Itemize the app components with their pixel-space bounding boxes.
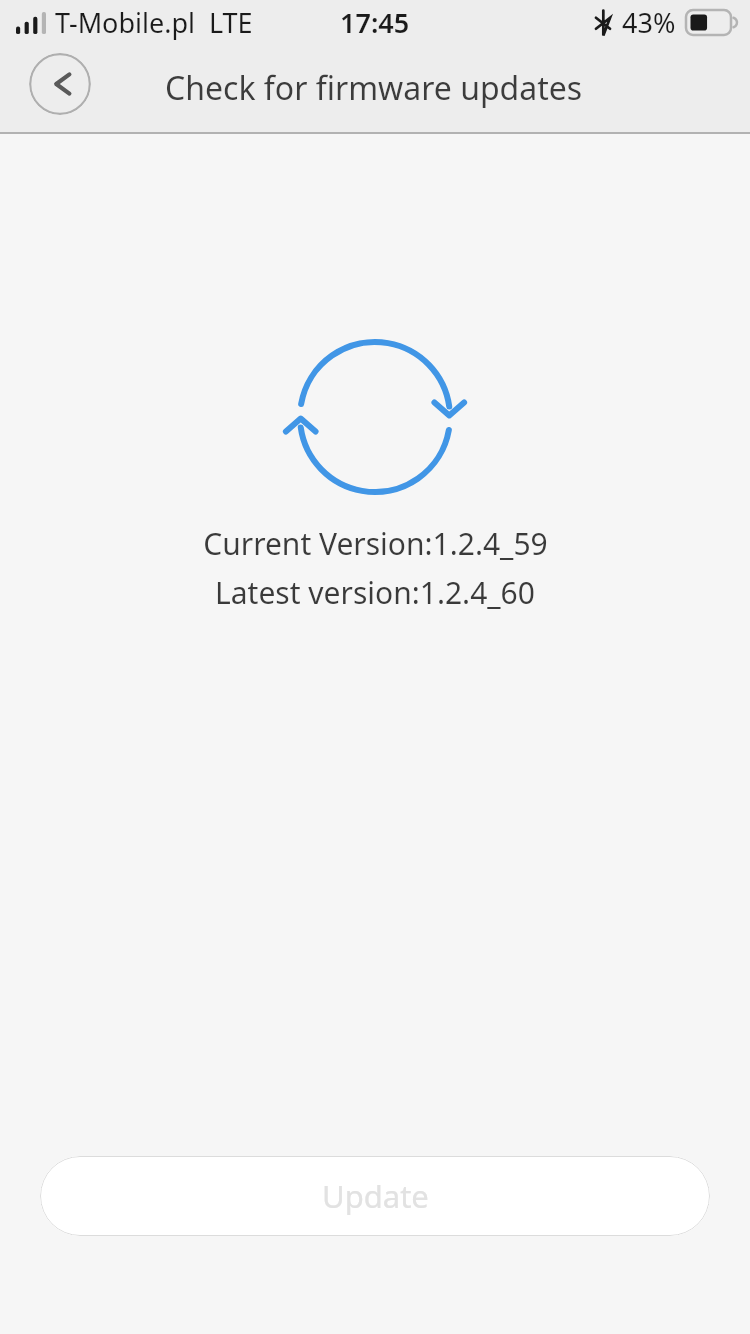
staticText: Update: [322, 1175, 429, 1217]
staticText: Current Version:1.2.4_59: [203, 523, 548, 564]
button[interactable]: Update: [40, 1156, 710, 1236]
staticText: LTE: [209, 4, 253, 41]
button[interactable]: Back: [29, 53, 91, 115]
staticText: Check for firmware updates: [165, 66, 583, 110]
staticText: 17:45: [340, 4, 410, 41]
staticText: T-Mobile.pl: [55, 4, 196, 41]
staticText: 43%: [622, 4, 676, 41]
staticText: Latest version:1.2.4_60: [215, 572, 535, 613]
